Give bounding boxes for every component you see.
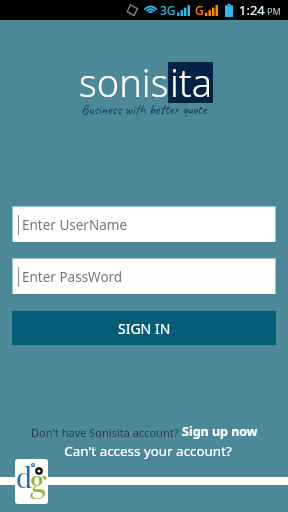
button[interactable]: Enter UserName xyxy=(13,207,275,242)
button[interactable]: dg company logo xyxy=(15,459,48,504)
staticText: Enter UserName xyxy=(22,216,128,234)
button[interactable]: Enter PassWord xyxy=(13,259,275,294)
staticText: SIGN IN xyxy=(118,319,171,338)
staticText: ita xyxy=(170,56,213,108)
button[interactable]: Sign up now xyxy=(182,423,258,440)
staticText: Business with better quote xyxy=(81,101,207,119)
button[interactable]: Can't access your account? xyxy=(4,442,288,460)
button[interactable]: SIGN IN xyxy=(12,311,276,345)
staticText: Enter PassWord xyxy=(22,268,123,286)
staticText: sonis xyxy=(79,56,169,108)
staticText: PM xyxy=(267,5,281,17)
staticText: Don't have Sonisita account? xyxy=(31,425,182,440)
staticText: 1:24 xyxy=(239,1,265,19)
staticText: G xyxy=(195,2,204,18)
staticText: 3G xyxy=(160,2,176,18)
staticText: g xyxy=(30,459,47,500)
staticText: d xyxy=(16,459,33,495)
